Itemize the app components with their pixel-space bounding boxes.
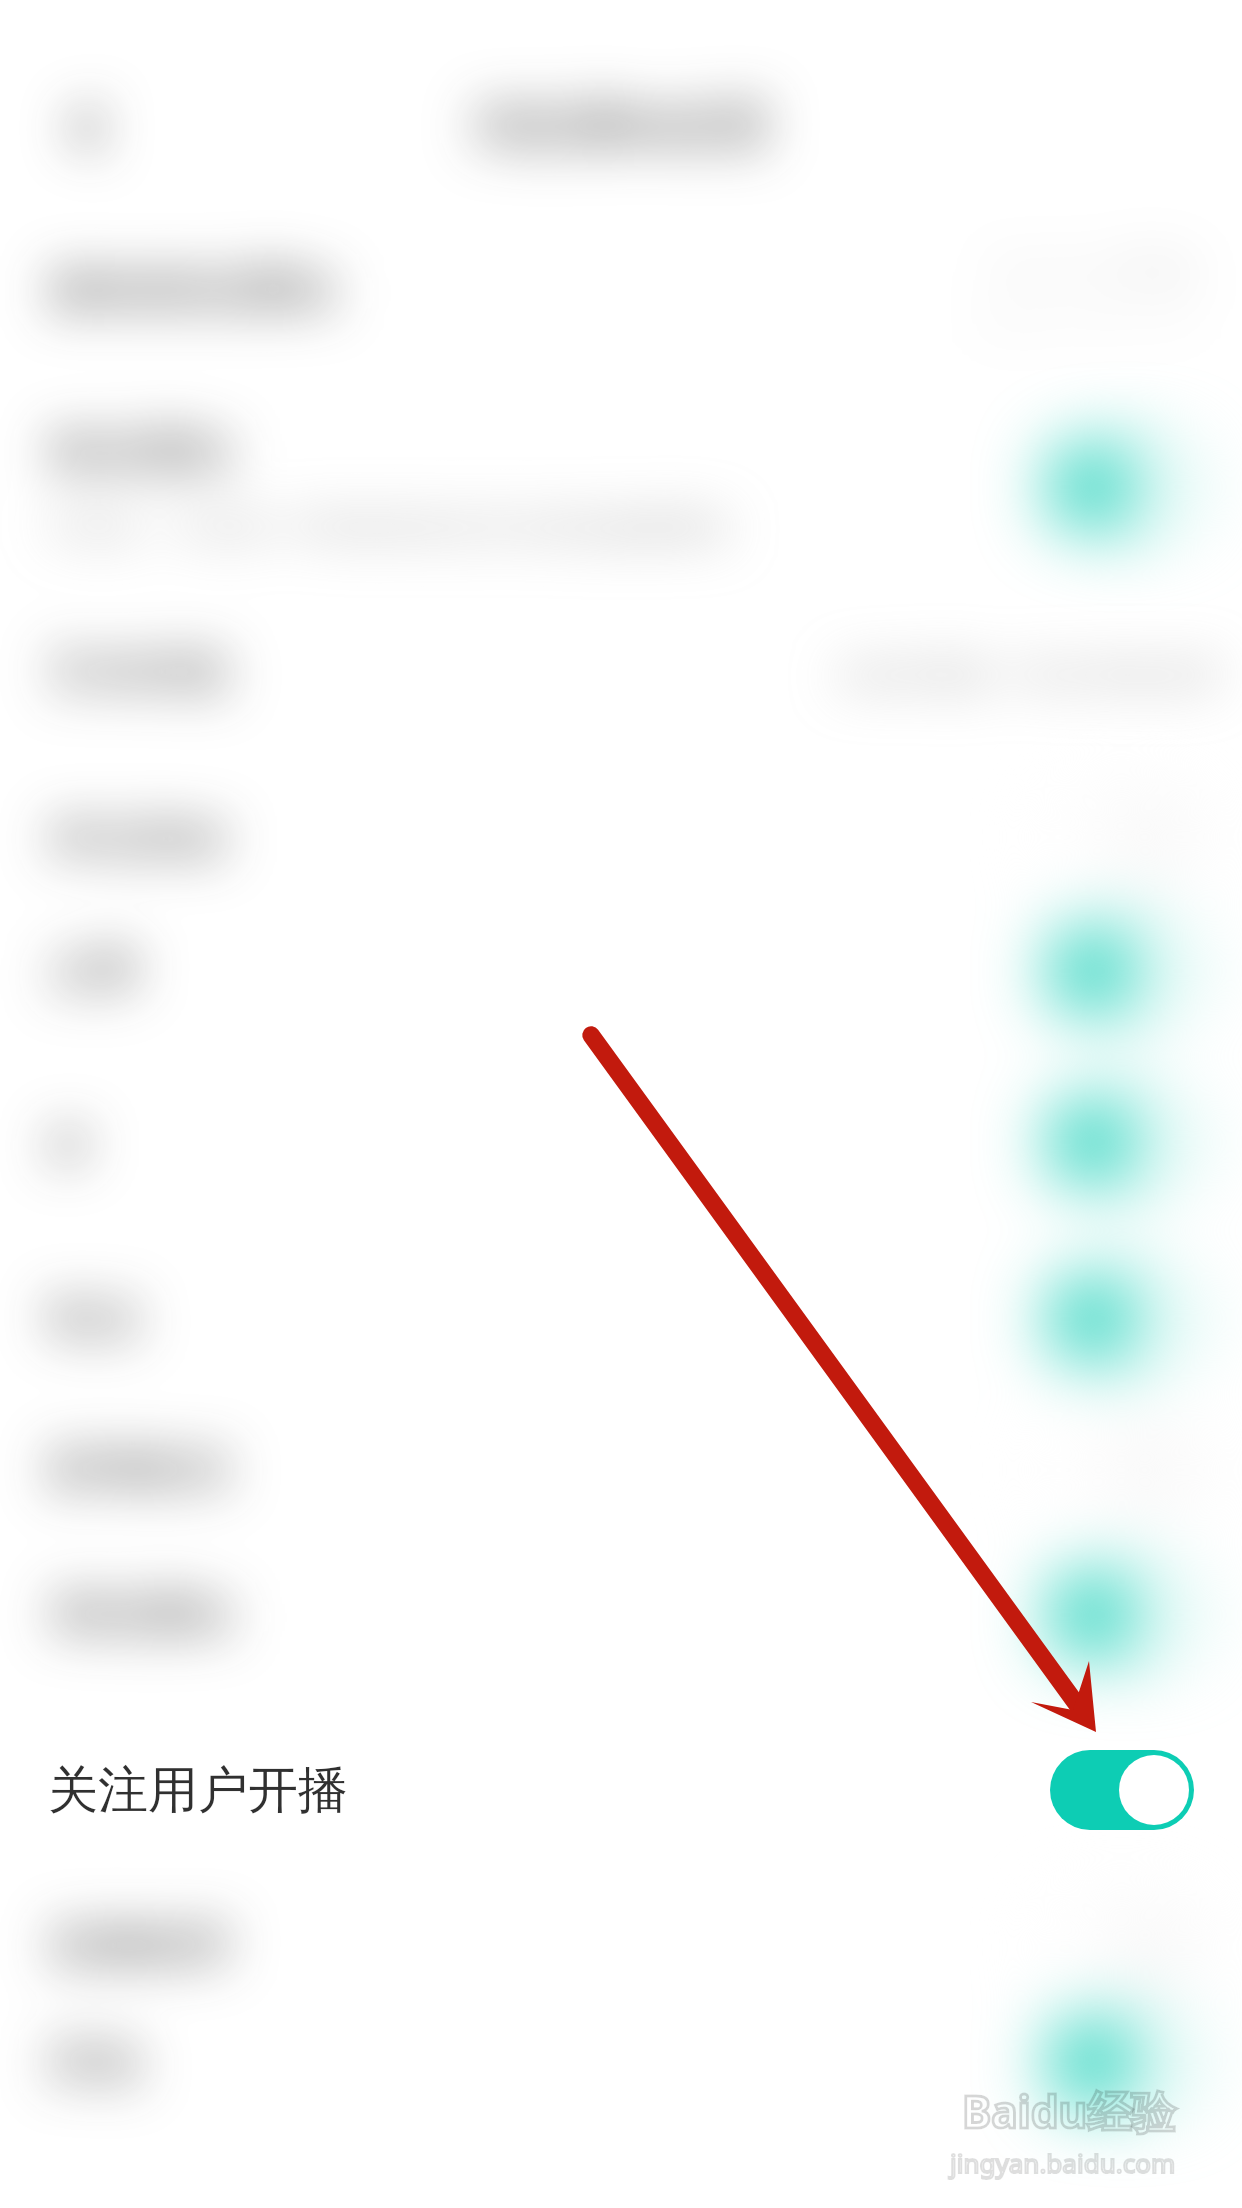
button[interactable]: 直播推荐 <box>0 1886 1242 2006</box>
staticText: @ <box>48 1111 90 1174</box>
button[interactable]: Turn off 点赞 <box>1050 931 1194 1011</box>
button[interactable]: 其他 <box>0 2002 1242 2122</box>
staticText: 评论和@ <box>48 806 228 869</box>
button[interactable]: Turn off 系统通知 <box>1050 1575 1194 1655</box>
button[interactable]: Turn off 私信 <box>1050 1279 1194 1359</box>
button[interactable]: Back <box>52 92 124 164</box>
staticText: Baidu经验 <box>962 2081 1176 2141</box>
staticText: 其他 <box>48 2033 140 2091</box>
staticText: 互动消息 <box>48 643 232 701</box>
button[interactable]: Turn off 其他 <box>1050 2022 1194 2102</box>
staticText: 新增粉丝 <box>48 1441 232 1499</box>
button[interactable]: Turn off 关注用户开播 <box>1050 1750 1194 1830</box>
button[interactable]: 私信 <box>0 1259 1242 1379</box>
button[interactable]: 开启后，可以第一时间收到好友互动消息提醒通知 <box>0 467 1242 587</box>
button[interactable]: Turn off 推送通知 <box>1050 447 1194 527</box>
button[interactable]: @ <box>0 1082 1242 1202</box>
staticText: 系统通知 <box>48 1586 232 1644</box>
staticText: jingyan.baidu.com <box>950 2145 1176 2180</box>
button[interactable]: 评论和@ <box>0 777 1242 897</box>
button[interactable]: 推送通知 <box>0 392 1242 512</box>
button[interactable]: 关注用户开播 <box>0 1708 1242 1872</box>
staticText: 直播推荐 <box>48 1917 232 1975</box>
staticText: 消息通知设置 <box>471 95 771 158</box>
button[interactable]: 接收推送通知 <box>0 230 1242 350</box>
button[interactable]: Turn off @ <box>1050 1102 1194 1182</box>
button[interactable]: 系统通知 <box>0 1555 1242 1675</box>
staticText: 点赞 <box>48 942 140 1000</box>
staticText: 接收推送通知 <box>48 260 336 320</box>
staticText: 推送通知 <box>48 423 232 481</box>
button[interactable]: 新增粉丝 <box>0 1410 1242 1530</box>
button[interactable]: 点赞 <box>0 911 1242 1031</box>
staticText: 私信 <box>48 1290 140 1348</box>
button[interactable]: 互动消息 <box>0 612 1242 732</box>
staticText: 关注用户开播 <box>48 1759 348 1822</box>
button[interactable]: Turn on 直播推荐 <box>1050 1906 1194 1986</box>
